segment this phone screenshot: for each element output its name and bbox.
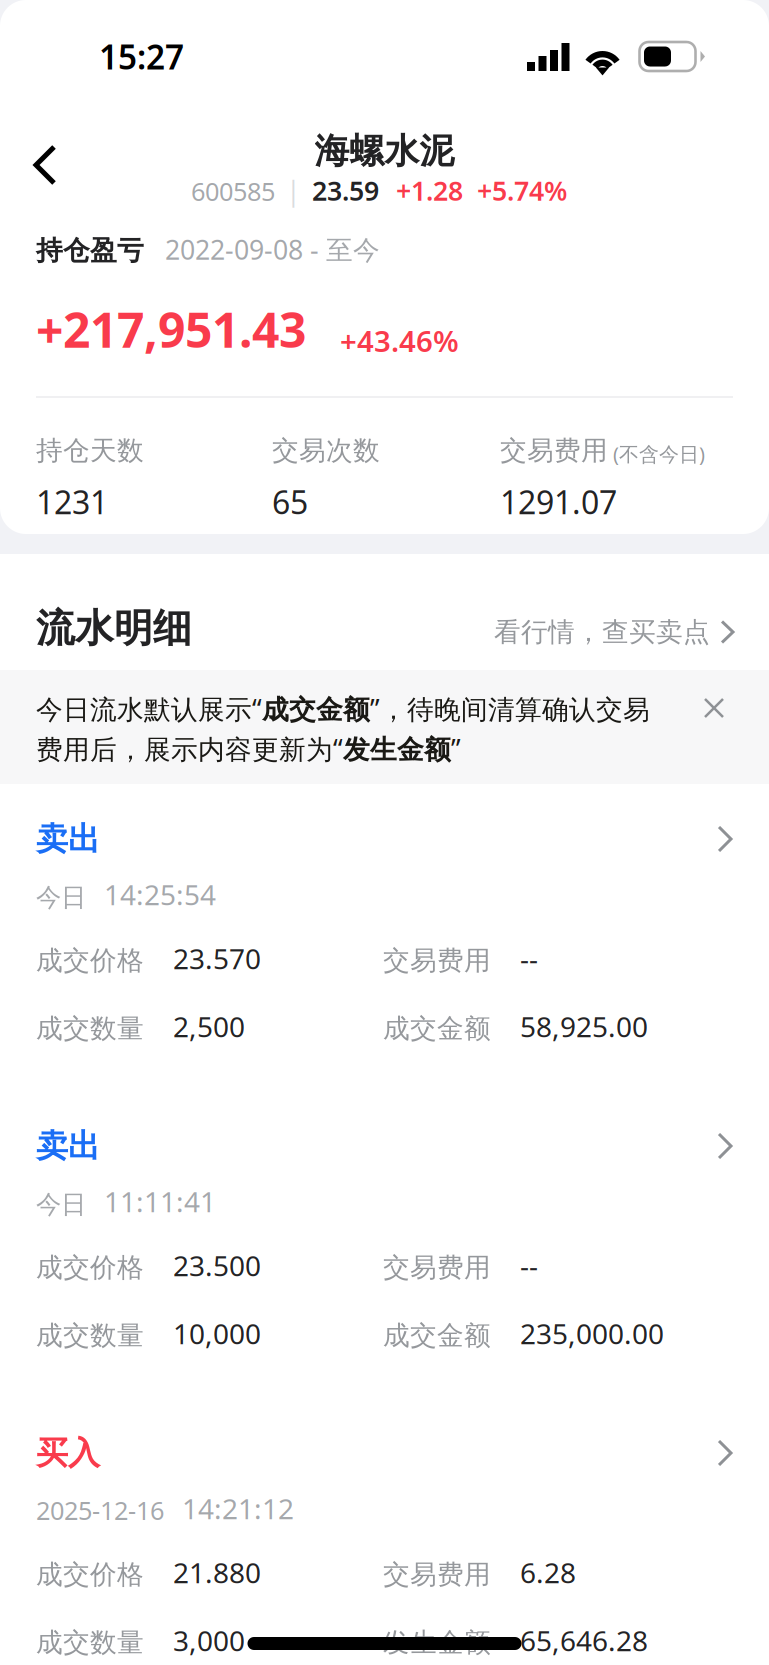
staticText: 成交金额 <box>383 1319 491 1352</box>
staticText: 交易费用 <box>383 944 491 977</box>
button[interactable]: 返回 <box>5 125 85 205</box>
button[interactable]: 看行情，查买卖点 <box>494 612 733 652</box>
staticText: 58,925.00 <box>520 1008 648 1045</box>
staticText: -- <box>520 1247 538 1284</box>
staticText: 6.28 <box>520 1554 576 1591</box>
staticText: 看行情，查买卖点 <box>494 616 710 648</box>
staticText: 流水明细 <box>36 604 192 652</box>
staticText: 65 <box>272 480 308 523</box>
staticText: 23.570 <box>173 940 261 977</box>
staticText: 买入 <box>36 1433 100 1473</box>
staticText: 10,000 <box>173 1315 261 1352</box>
staticText: | <box>286 173 301 208</box>
staticText: 235,000.00 <box>520 1315 664 1352</box>
staticText: 21.880 <box>173 1554 261 1591</box>
staticText: 600585 <box>191 174 275 208</box>
staticText: 1291.07 <box>500 480 617 523</box>
staticText: 今日 <box>36 1189 86 1220</box>
staticText: 15:27 <box>99 34 184 79</box>
staticText: 卖出 <box>36 819 100 859</box>
button[interactable]: 卖出 <box>0 823 769 1130</box>
button[interactable]: 卖出 <box>0 1130 769 1437</box>
staticText: 3,000 <box>173 1622 245 1659</box>
staticText: 发生金额 <box>383 1626 491 1659</box>
staticText: 2025-12-16 <box>36 1493 164 1527</box>
staticText: 成交价格 <box>36 944 144 977</box>
button[interactable]: 关闭提示 <box>692 686 736 730</box>
staticText: 65,646.28 <box>520 1622 648 1659</box>
staticText: 今日 <box>36 882 86 913</box>
staticText: +1.28 <box>396 173 463 208</box>
staticText: 2022-09-08 - 至今 <box>165 232 380 267</box>
staticText: 14:25:54 <box>104 876 216 913</box>
staticText: 14:21:12 <box>182 1490 294 1527</box>
staticText: 成交数量 <box>36 1012 144 1045</box>
staticText: 费用后，展示内容更新为“发生金额” <box>36 731 461 766</box>
staticText: 成交金额 <box>383 1012 491 1045</box>
staticText: 11:11:41 <box>104 1183 216 1220</box>
staticText: 成交价格 <box>36 1251 144 1284</box>
staticText: +43.46% <box>340 321 459 360</box>
staticText: 成交数量 <box>36 1626 144 1659</box>
staticText: 交易费用 <box>383 1251 491 1284</box>
staticText: -- <box>520 940 538 977</box>
staticText: 持仓盈亏 <box>36 234 144 267</box>
staticText: 23.59 <box>312 173 379 208</box>
staticText: 1231 <box>36 480 108 523</box>
staticText: 成交数量 <box>36 1319 144 1352</box>
staticText: 交易费用 <box>500 434 608 467</box>
staticText: 成交价格 <box>36 1558 144 1591</box>
staticText: 今日流水默认展示“成交金额”，待晚间清算确认交易 <box>36 691 650 726</box>
staticText: (不含今日) <box>613 440 705 467</box>
staticText: 海螺水泥 <box>314 130 454 173</box>
staticText: 交易次数 <box>272 434 380 467</box>
staticText: 交易费用 <box>383 1558 491 1591</box>
button[interactable]: 买入 <box>0 1437 769 1665</box>
staticText: 卖出 <box>36 1126 100 1166</box>
staticText: +217,951.43 <box>36 297 306 361</box>
staticText: 持仓天数 <box>36 434 144 467</box>
staticText: 23.500 <box>173 1247 261 1284</box>
staticText: 2,500 <box>173 1008 245 1045</box>
staticText: +5.74% <box>477 173 567 208</box>
